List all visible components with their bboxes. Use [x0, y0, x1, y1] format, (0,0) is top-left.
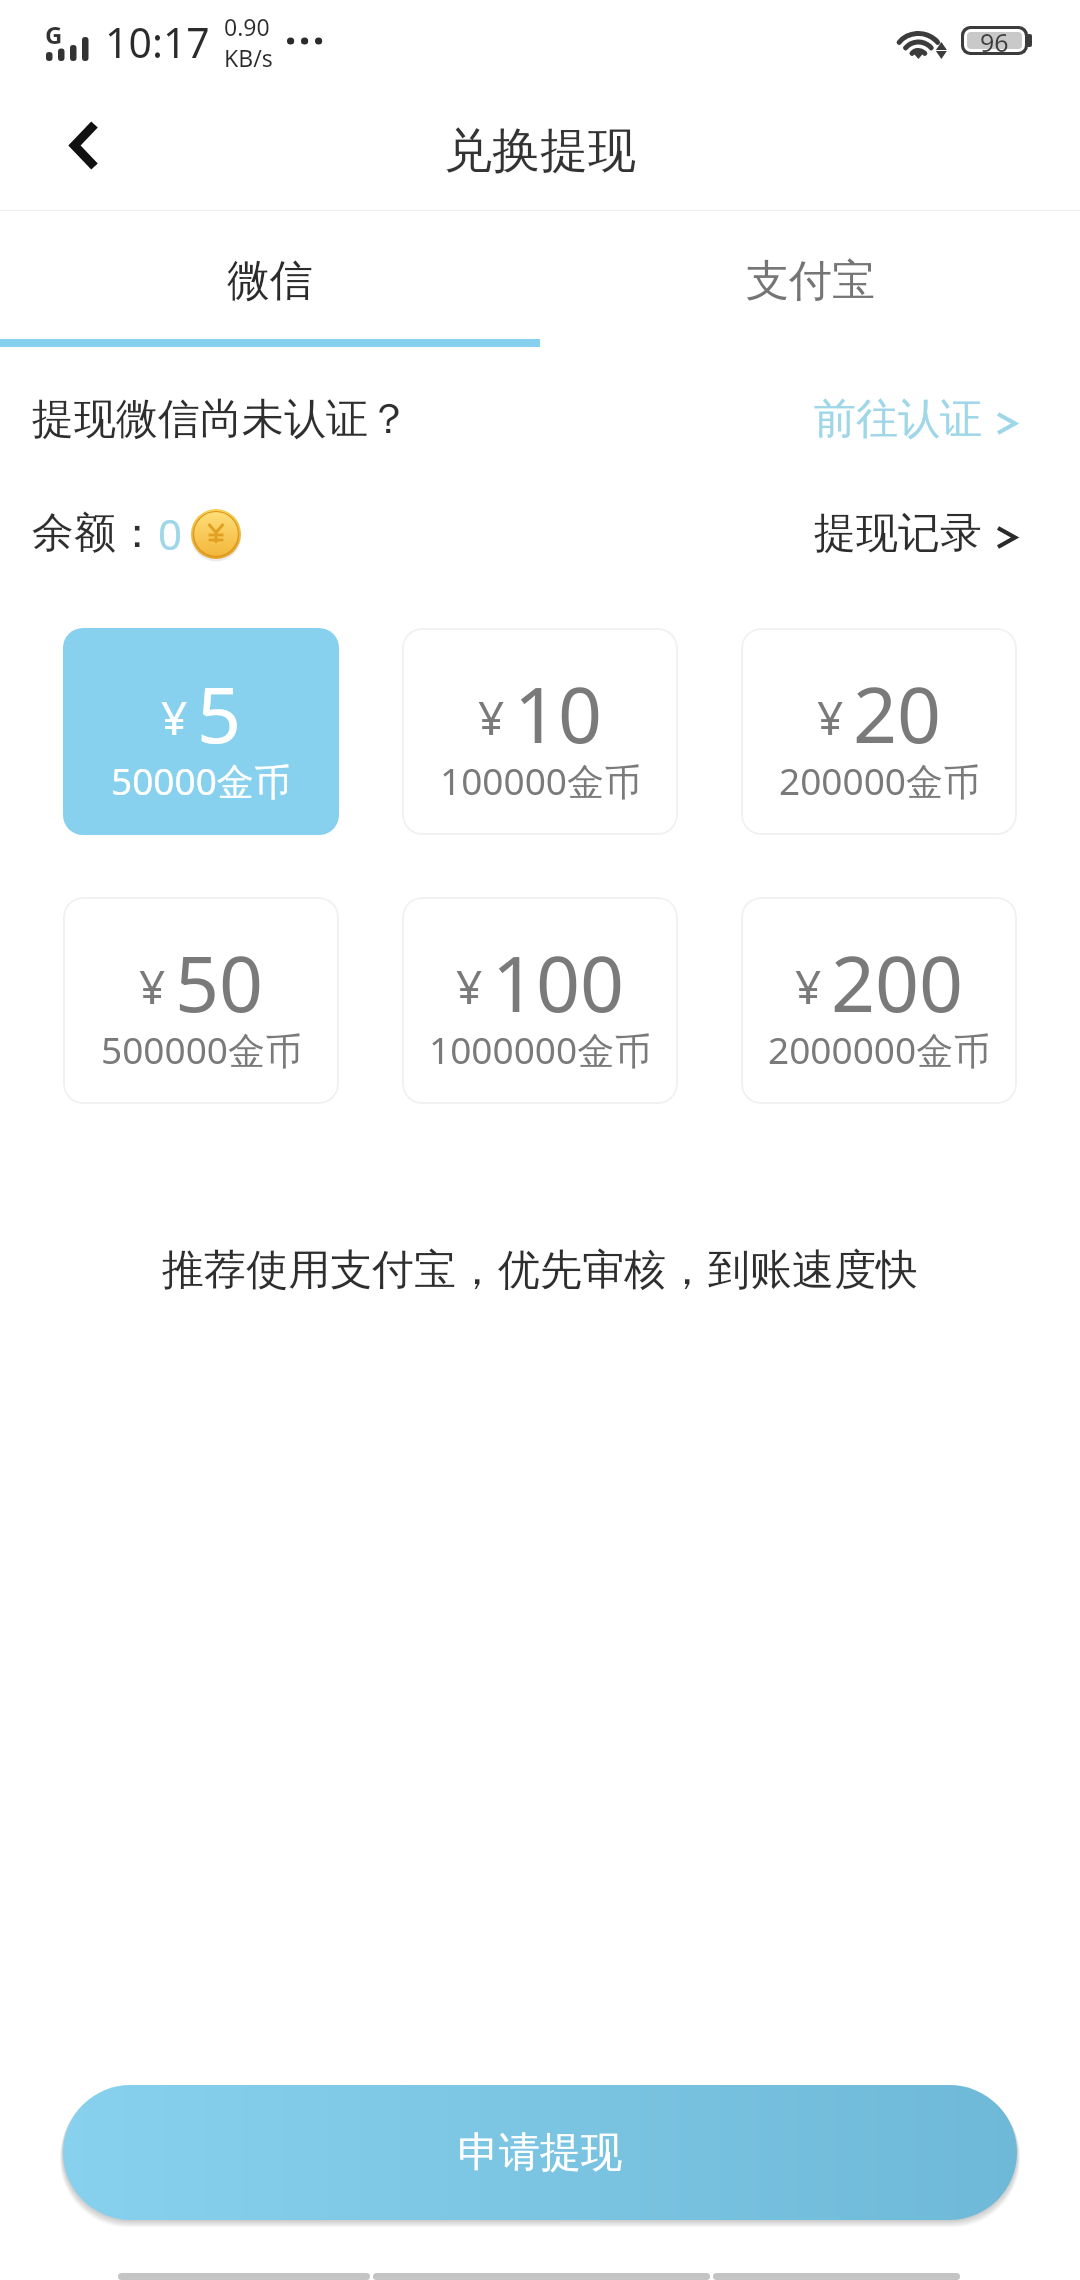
staticText: 50: [175, 930, 264, 1035]
staticText: 96: [980, 25, 1009, 54]
staticText: 200: [831, 930, 964, 1035]
staticText: 50000金币: [111, 755, 291, 806]
staticText: G: [45, 18, 63, 51]
button[interactable]: ¥: [63, 897, 339, 1104]
staticText: 10: [514, 661, 603, 766]
button[interactable]: ¥: [63, 628, 339, 835]
staticText: 微信: [227, 254, 313, 308]
staticText: 200000金币: [779, 755, 980, 806]
staticText: 1000000金币: [429, 1024, 652, 1075]
staticText: ¥: [817, 686, 844, 749]
button[interactable]: 前往认证: [814, 385, 1017, 454]
staticText: 申请提现: [458, 2127, 622, 2179]
staticText: 提现微信尚未认证？: [32, 393, 410, 446]
staticText: 支付宝: [746, 254, 875, 308]
staticText: 兑换提现: [444, 121, 636, 181]
button[interactable]: 微信: [0, 211, 540, 347]
button[interactable]: 申请提现: [63, 2085, 1017, 2220]
button[interactable]: Back: [38, 105, 130, 197]
staticText: 5: [197, 661, 242, 766]
staticText: 20: [853, 661, 942, 766]
button[interactable]: ¥: [741, 628, 1017, 835]
staticText: 推荐使用支付宝，优先审核，到账速度快: [0, 1244, 1080, 1297]
staticText: ¥: [161, 686, 188, 749]
staticText: 100: [492, 930, 625, 1035]
button[interactable]: ¥: [402, 897, 678, 1104]
button[interactable]: 提现记录: [814, 499, 1017, 568]
staticText: 2000000金币: [768, 1024, 991, 1075]
staticText: 提现记录: [814, 507, 982, 560]
staticText: 0: [158, 505, 183, 562]
staticText: 0.90: [224, 11, 270, 42]
button[interactable]: 支付宝: [540, 211, 1080, 347]
button[interactable]: ¥: [402, 628, 678, 835]
staticText: ¥: [456, 955, 483, 1018]
staticText: ¥: [139, 955, 166, 1018]
staticText: 前往认证: [814, 393, 982, 446]
staticText: 500000金币: [101, 1024, 302, 1075]
staticText: ¥: [478, 686, 505, 749]
staticText: 余额：: [32, 507, 158, 560]
staticText: ¥: [795, 955, 822, 1018]
button[interactable]: ¥: [741, 897, 1017, 1104]
staticText: KB/s: [224, 42, 273, 73]
staticText: 100000金币: [440, 755, 641, 806]
staticText: 10:17: [105, 14, 210, 70]
